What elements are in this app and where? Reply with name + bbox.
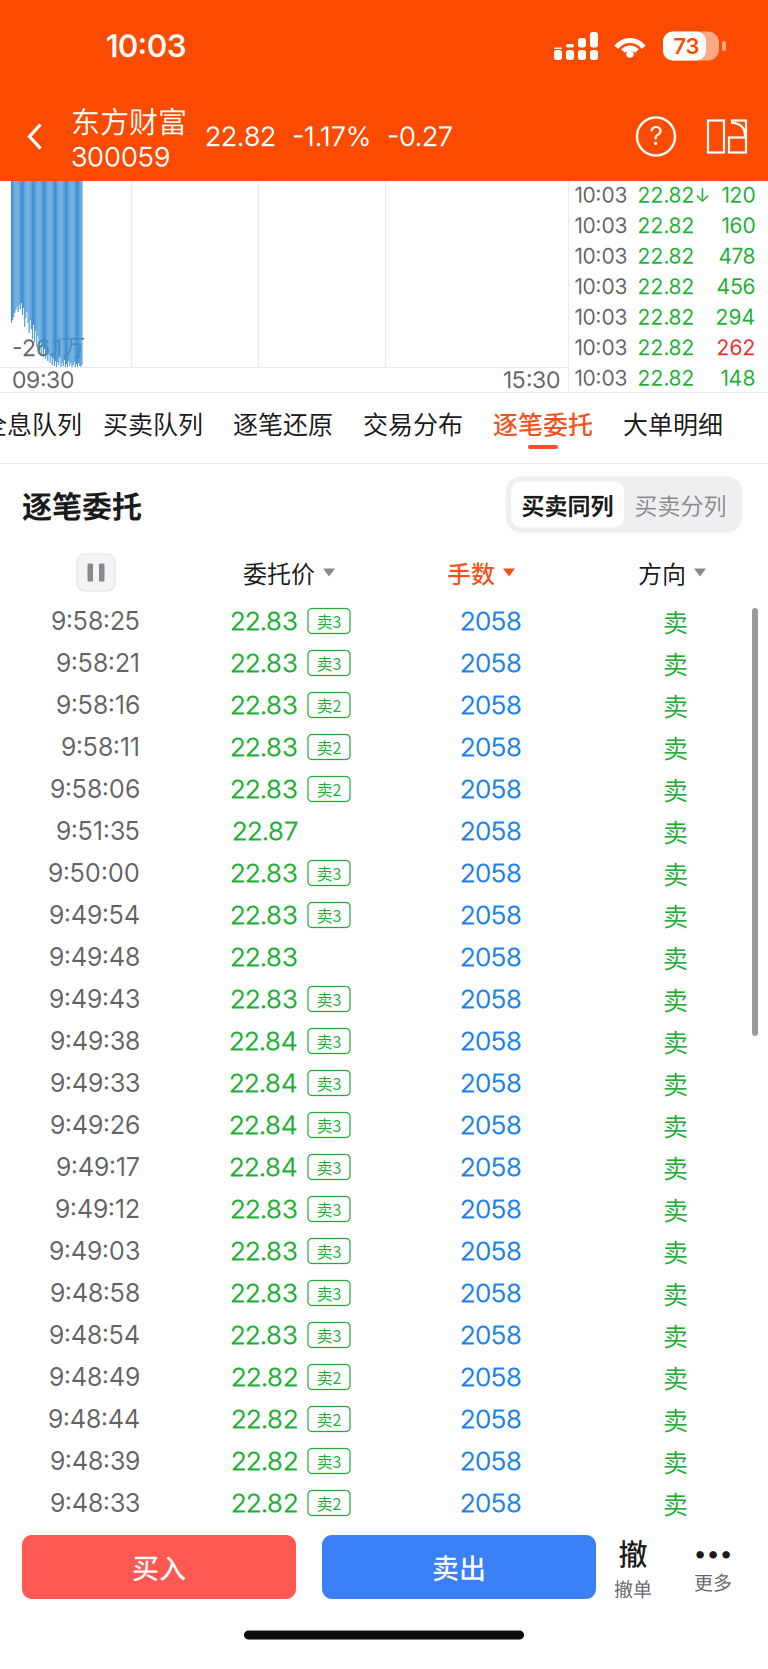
staticText: 撤单 (614, 1575, 652, 1602)
staticText: 2058 (460, 1487, 522, 1519)
staticText: 卖3 (316, 1323, 341, 1347)
staticText: -26.1万 (12, 333, 85, 362)
staticText: 22.83 (230, 1319, 298, 1351)
staticText: 卖 (663, 1485, 688, 1521)
staticText: 卖2 (316, 1407, 341, 1431)
staticText: 逐笔委托 (22, 483, 142, 526)
staticText: 卖 (663, 1443, 688, 1479)
staticText: 09:30 (12, 366, 74, 394)
staticText: 2058 (460, 1277, 522, 1309)
staticText: 卖2 (316, 777, 341, 801)
button[interactable]: 手数 (386, 545, 576, 600)
staticText: 卖2 (316, 735, 341, 759)
button[interactable]: 买卖分列 (624, 481, 737, 527)
staticText: 456 (716, 274, 755, 299)
staticText: 卖 (663, 1275, 688, 1311)
staticText: 2058 (460, 1067, 522, 1099)
staticText: 22.82 (637, 243, 694, 269)
staticText: 9:49:26 (50, 1110, 140, 1140)
staticText: 2058 (460, 647, 522, 679)
staticText: 22.84 (229, 1109, 298, 1141)
staticText: 10:03 (574, 304, 627, 330)
staticText: 卖3 (316, 1197, 341, 1221)
staticText: 卖 (663, 855, 688, 891)
staticText: 22.83 (230, 983, 298, 1015)
staticText: 2058 (460, 983, 522, 1015)
button[interactable]: 卖出 (322, 1535, 596, 1599)
button[interactable]: Rotate screen (704, 108, 752, 164)
staticText: 卖2 (316, 1491, 341, 1515)
button[interactable]: ••• (676, 1533, 750, 1601)
button[interactable]: Back (0, 90, 71, 182)
staticText: 卖出 (432, 1547, 486, 1587)
staticText: 9:49:33 (50, 1068, 140, 1098)
staticText: 卖2 (316, 1365, 341, 1389)
staticText: 9:48:44 (48, 1404, 140, 1434)
button[interactable]: 买卖队列 (88, 393, 218, 463)
button[interactable]: 逐笔还原 (218, 393, 348, 463)
staticText: 买卖队列 (103, 405, 203, 441)
staticText: 300059 (71, 141, 170, 173)
staticText: 卖 (663, 1359, 688, 1395)
button[interactable]: 方向 (576, 545, 768, 600)
staticText: 22.83 (230, 857, 298, 889)
staticText: 120 (721, 182, 755, 208)
staticText: 22.83 (230, 731, 298, 763)
staticText: 东方财富 (71, 100, 187, 142)
staticText: 2058 (460, 1235, 522, 1267)
staticText: 22.83 (230, 941, 298, 973)
staticText: ↓ (694, 183, 710, 206)
staticText: 9:49:43 (49, 984, 140, 1014)
staticText: 9:58:06 (50, 774, 140, 804)
button[interactable]: 买入 (22, 1535, 296, 1599)
staticText: 9:58:21 (56, 648, 140, 678)
staticText: -0.27 (387, 120, 453, 153)
button[interactable]: 委托价 (192, 545, 386, 600)
staticText: 卖3 (316, 609, 341, 633)
staticText: 15:30 (503, 366, 560, 394)
staticText: 10:03 (574, 365, 627, 391)
staticText: 卖 (663, 939, 688, 975)
button[interactable]: Help (632, 108, 680, 164)
staticText: 卖3 (316, 1029, 341, 1053)
button[interactable]: 撤 (596, 1533, 670, 1601)
button[interactable]: 交易分布 (348, 393, 478, 463)
staticText: 逐笔还原 (233, 405, 333, 441)
staticText: 2058 (460, 1319, 522, 1351)
button[interactable]: 大单明细 (608, 393, 738, 463)
staticText: 22.83 (230, 647, 298, 679)
staticText: 9:58:25 (51, 606, 140, 636)
button[interactable]: 全息队列 (0, 393, 88, 463)
staticText: 10:03 (574, 243, 627, 269)
button[interactable]: 逐笔委托 (478, 393, 608, 463)
staticText: -1.17% (292, 120, 371, 153)
staticText: 10:03 (574, 274, 627, 299)
staticText: ••• (693, 1538, 732, 1567)
button[interactable]: Pause updates (0, 545, 192, 600)
staticText: 2058 (460, 941, 522, 973)
button[interactable]: 买卖同列 (511, 481, 624, 527)
staticText: 手数 (447, 555, 495, 590)
staticText: 卖 (663, 981, 688, 1017)
staticText: 全息队列 (0, 405, 82, 441)
staticText: 2058 (460, 1403, 522, 1435)
staticText: 9:58:16 (56, 690, 140, 720)
staticText: 卖 (663, 897, 688, 933)
staticText: 卖 (663, 1317, 688, 1353)
staticText: 9:48:33 (50, 1488, 140, 1518)
staticText: 卖 (663, 1065, 688, 1101)
staticText: 2058 (460, 689, 522, 721)
staticText: 22.82 (637, 213, 694, 238)
staticText: 2058 (460, 731, 522, 763)
staticText: 9:49:54 (49, 900, 140, 930)
staticText: 10:03 (574, 182, 627, 208)
staticText: 卖3 (316, 987, 341, 1011)
staticText: 2058 (460, 1193, 522, 1225)
staticText: 10:03 (574, 335, 627, 360)
staticText: 2058 (460, 1445, 522, 1477)
staticText: 2058 (460, 1361, 522, 1393)
staticText: 卖 (663, 687, 688, 723)
staticText: ? (649, 120, 662, 151)
staticText: 卖3 (316, 1113, 341, 1137)
staticText: 卖 (663, 645, 688, 681)
